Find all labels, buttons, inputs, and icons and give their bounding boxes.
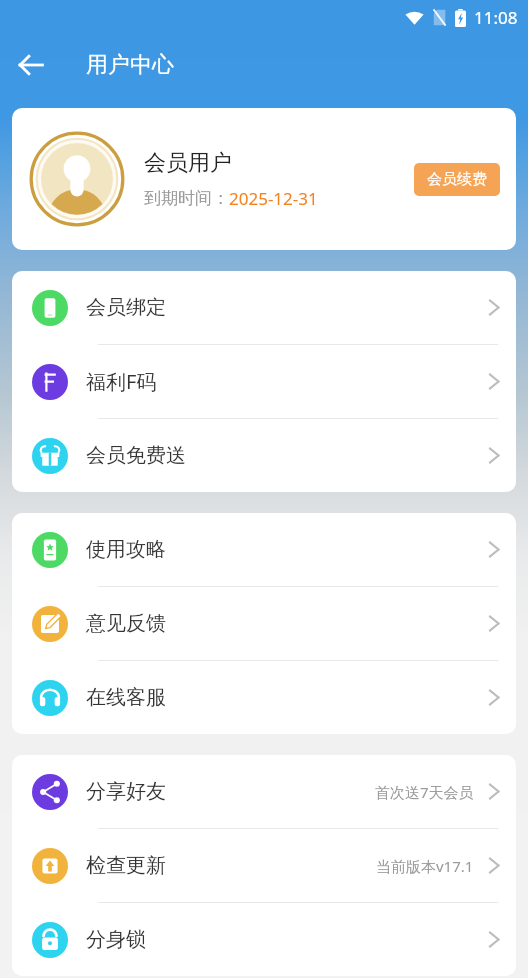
staticText: 首次送7天会员 [375, 782, 474, 802]
button[interactable]: 检查更新 [12, 829, 516, 902]
staticText: 检查更新 [86, 853, 166, 878]
staticText: 2025-12-31 [229, 187, 318, 210]
staticText: 会员免费送 [86, 443, 186, 468]
button[interactable]: 在线客服 [12, 661, 516, 734]
button[interactable]: Back [6, 40, 56, 90]
button[interactable]: 会员免费送 [12, 419, 516, 492]
staticText: 会员续费 [427, 170, 487, 189]
staticText: 在线客服 [86, 685, 166, 710]
button[interactable]: 使用攻略 [12, 513, 516, 586]
button[interactable]: 分身锁 [12, 903, 516, 976]
button[interactable]: 会员绑定 [12, 271, 516, 344]
button[interactable]: 福利F码 [12, 345, 516, 418]
button[interactable]: 意见反馈 [12, 587, 516, 660]
staticText: 当前版本v17.1 [376, 856, 474, 876]
button[interactable]: 会员续费 [414, 163, 500, 196]
button[interactable]: 会员用户 [12, 108, 516, 250]
staticText: 到期时间： [144, 188, 229, 209]
staticText: 分身锁 [86, 927, 146, 952]
button[interactable]: 分享好友 [12, 755, 516, 828]
staticText: 会员绑定 [86, 295, 166, 320]
staticText: 使用攻略 [86, 537, 166, 562]
staticText: 会员用户 [144, 149, 232, 177]
staticText: 11:08 [474, 6, 518, 29]
staticText: 福利F码 [86, 368, 157, 395]
staticText: 意见反馈 [86, 611, 166, 636]
staticText: 分享好友 [86, 779, 166, 804]
staticText: 用户中心 [86, 51, 174, 79]
